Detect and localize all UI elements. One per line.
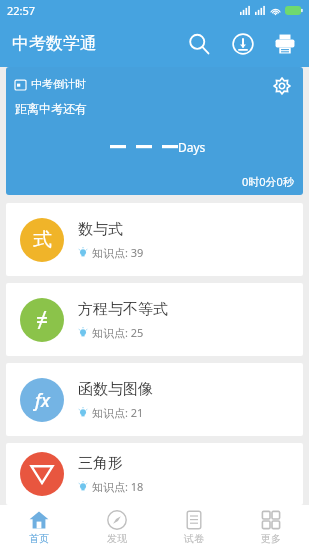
staticText: 方程与不等式 (78, 300, 168, 319)
staticText: 数与式 (78, 220, 123, 239)
button[interactable]: Search (177, 22, 221, 66)
staticText: 知识点: 39 (92, 245, 144, 260)
staticText: 首页 (29, 532, 49, 545)
button[interactable]: Download (221, 22, 265, 66)
staticText: 三角形 (78, 454, 123, 473)
button[interactable]: ≠ (6, 283, 303, 356)
staticText: 距离中考还有 (15, 101, 87, 116)
button[interactable]: Print (265, 22, 305, 66)
staticText: 知识点: 25 (92, 325, 144, 340)
button[interactable]: 三角形 (6, 443, 303, 505)
button[interactable]: 中考倒计时 (6, 67, 303, 195)
staticText: 函数与图像 (78, 380, 153, 399)
staticText: 知识点: 21 (92, 405, 144, 420)
button[interactable]: 式 (6, 203, 303, 276)
button[interactable]: 首页 (0, 505, 78, 550)
staticText: 试卷 (184, 532, 204, 545)
staticText: 中考数学通 (12, 33, 97, 54)
staticText: ≠ (36, 306, 49, 335)
staticText: 发现 (107, 532, 127, 545)
staticText: 更多 (261, 532, 281, 545)
staticText: 0时0分0秒 (242, 174, 294, 189)
staticText: Days (178, 139, 206, 155)
staticText: fx (35, 388, 50, 413)
staticText: 22:57 (7, 3, 36, 18)
button[interactable]: 发现 (78, 505, 155, 550)
button[interactable]: Settings (269, 73, 295, 99)
staticText: 式 (33, 228, 52, 252)
button[interactable]: fx (6, 363, 303, 436)
staticText: 中考倒计时 (31, 77, 86, 91)
button[interactable]: 试卷 (155, 505, 232, 550)
staticText: 知识点: 18 (92, 479, 144, 494)
button[interactable]: 更多 (232, 505, 309, 550)
